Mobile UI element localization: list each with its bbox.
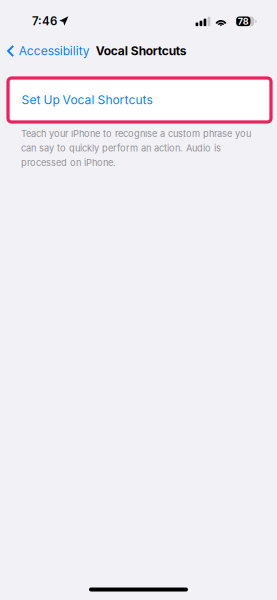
button[interactable]: Set Up Vocal Shortcuts xyxy=(8,78,271,122)
staticText: 78 xyxy=(238,16,249,27)
staticText: 7:46 xyxy=(32,14,57,28)
staticText: Accessibility xyxy=(19,44,90,58)
staticText: Set Up Vocal Shortcuts xyxy=(21,93,152,107)
button[interactable]: Accessibility xyxy=(0,39,93,63)
staticText: Teach your iPhone to recognise a custom … xyxy=(21,128,251,168)
staticText: Vocal Shortcuts xyxy=(96,44,187,58)
